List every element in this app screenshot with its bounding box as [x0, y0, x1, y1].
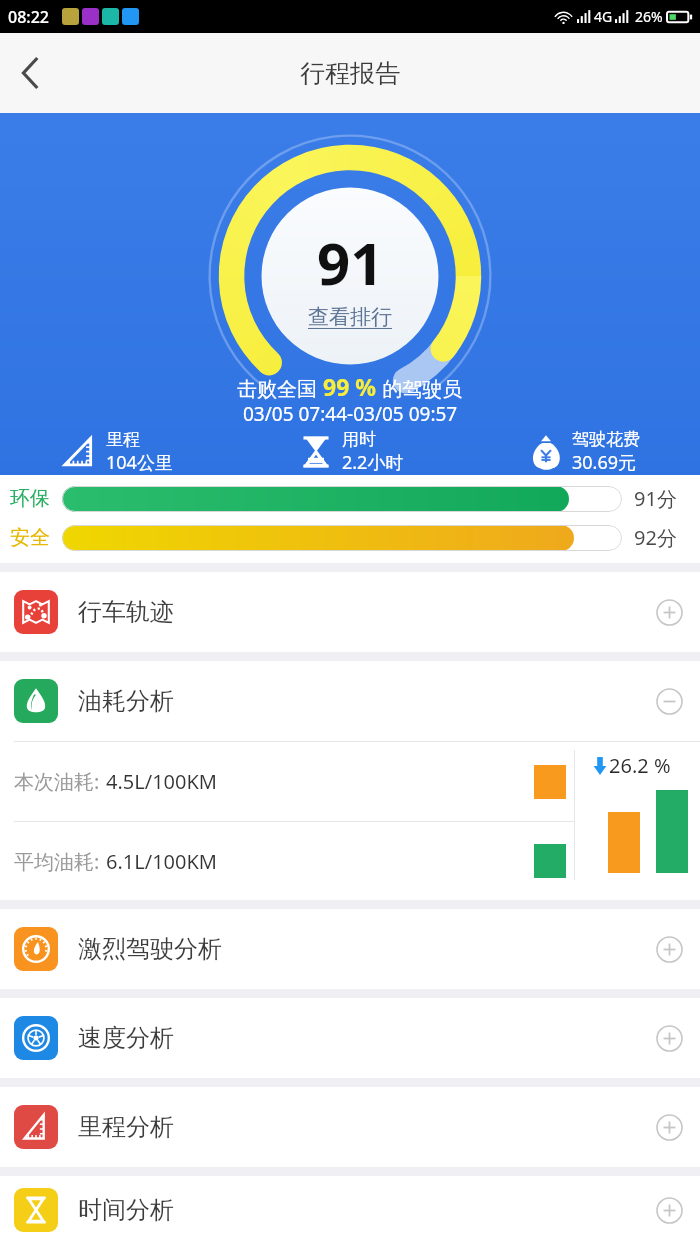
staticText: 油耗分析: [78, 686, 174, 716]
staticText: 安全: [10, 525, 62, 550]
staticText: 驾驶花费: [572, 429, 640, 450]
staticText: 26.2 %: [609, 752, 671, 779]
staticText: 99 %: [323, 371, 377, 402]
staticText: 6.1L/100KM: [106, 848, 217, 875]
staticText: 4G: [594, 7, 613, 26]
button[interactable]: Back: [0, 42, 62, 104]
staticText: 92分: [634, 524, 690, 551]
staticText: 击败全国: [237, 375, 323, 402]
staticText: 平均油耗:: [14, 848, 100, 875]
staticText: 用时: [342, 429, 376, 450]
button[interactable]: 油耗分析: [0, 661, 700, 741]
button[interactable]: Expand: [652, 1110, 686, 1144]
staticText: 环保: [10, 486, 62, 511]
button[interactable]: 激烈驾驶分析: [0, 909, 700, 989]
staticText: 行程报告: [300, 58, 400, 89]
staticText: 里程分析: [78, 1112, 174, 1142]
staticText: 08:22: [8, 6, 49, 28]
staticText: 里程: [106, 429, 140, 450]
staticText: 26%: [635, 7, 663, 26]
staticText: 91分: [634, 485, 690, 512]
button[interactable]: 行车轨迹: [0, 572, 700, 652]
button[interactable]: Collapse: [652, 684, 686, 718]
button[interactable]: 时间分析: [0, 1176, 700, 1244]
button[interactable]: Expand: [652, 1193, 686, 1227]
staticText: 时间分析: [78, 1195, 174, 1225]
staticText: 03/05 07:44-03/05 09:57: [243, 401, 458, 427]
staticText: 速度分析: [78, 1023, 174, 1053]
staticText: 104公里: [106, 450, 173, 475]
button[interactable]: 里程分析: [0, 1087, 700, 1167]
staticText: 4.5L/100KM: [106, 768, 217, 795]
staticText: 查看排行: [308, 304, 392, 330]
staticText: 2.2小时: [342, 450, 404, 475]
staticText: 行车轨迹: [78, 597, 174, 627]
staticText: 的驾驶员: [377, 375, 463, 402]
staticText: 91: [317, 223, 384, 302]
button[interactable]: 查看排行: [308, 304, 392, 330]
button[interactable]: Expand: [652, 595, 686, 629]
staticText: 30.69元: [572, 450, 637, 475]
staticText: 激烈驾驶分析: [78, 934, 222, 964]
button[interactable]: Expand: [652, 1021, 686, 1055]
button[interactable]: Expand: [652, 932, 686, 966]
staticText: 本次油耗:: [14, 768, 100, 795]
button[interactable]: 速度分析: [0, 998, 700, 1078]
